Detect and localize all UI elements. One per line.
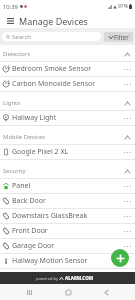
- staticText: Bedroom Smoke Sensor: [12, 64, 123, 74]
- button[interactable]: Mobile Devices: [0, 130, 135, 144]
- staticText: Panel: [12, 181, 123, 191]
- staticText: Filter: [114, 33, 129, 41]
- staticText: Carbon Monoxide Sensor: [12, 79, 123, 89]
- other: More options: [123, 146, 132, 158]
- staticText: Search: [12, 33, 31, 41]
- button[interactable]: Downstairs GlassBreak: [0, 209, 135, 223]
- button[interactable]: Filter: [104, 32, 133, 42]
- staticText: Hallway Light: [12, 113, 123, 123]
- staticText: Hallway Motion Sensor: [12, 256, 123, 266]
- other: More options: [123, 255, 132, 267]
- other: More options: [123, 78, 132, 90]
- button[interactable]: Back Door: [0, 194, 135, 208]
- button[interactable]: Carbon Monoxide Sensor: [0, 77, 135, 91]
- staticText: Back Door: [12, 196, 123, 206]
- staticText: 10:39: [3, 3, 18, 11]
- staticText: Google Pixel 2 XL: [12, 147, 123, 157]
- other: More options: [123, 210, 132, 222]
- other: More options: [123, 240, 132, 252]
- staticText: Detectors: [3, 50, 31, 58]
- staticText: Mobile Devices: [3, 133, 46, 141]
- other: More options: [123, 195, 132, 207]
- button[interactable]: Detectors: [0, 47, 135, 61]
- button[interactable]: Menu: [4, 15, 16, 27]
- staticText: 97%: [118, 3, 128, 10]
- button[interactable]: Lights: [0, 96, 135, 110]
- button[interactable]: Hallway Motion Sensor: [0, 254, 135, 268]
- staticText: powered by: [36, 276, 58, 281]
- staticText: Garage Door: [12, 241, 123, 251]
- button[interactable]: Back: [99, 285, 113, 299]
- button[interactable]: Home: [61, 285, 75, 299]
- button[interactable]: Security: [0, 164, 135, 178]
- staticText: ALARM.COM: [65, 275, 94, 281]
- button[interactable]: Add device: [111, 249, 129, 267]
- staticText: Security: [3, 167, 26, 175]
- button[interactable]: Bedroom Smoke Sensor: [0, 62, 135, 76]
- other: More options: [123, 63, 132, 75]
- staticText: Lights: [3, 99, 21, 107]
- button[interactable]: Panel: [0, 179, 135, 193]
- button[interactable]: Search: [2, 32, 101, 41]
- staticText: Front Door: [12, 226, 123, 236]
- other: More options: [123, 180, 132, 192]
- button[interactable]: Hallway Light: [0, 111, 135, 125]
- other: More options: [123, 225, 132, 237]
- button[interactable]: Garage Door: [0, 239, 135, 253]
- button[interactable]: Google Pixel 2 XL: [0, 145, 135, 159]
- staticText: Manage Devices: [19, 15, 88, 27]
- button[interactable]: Front Door: [0, 224, 135, 238]
- other: More options: [123, 112, 132, 124]
- staticText: Downstairs GlassBreak: [12, 211, 123, 221]
- button[interactable]: Recents: [22, 285, 36, 299]
